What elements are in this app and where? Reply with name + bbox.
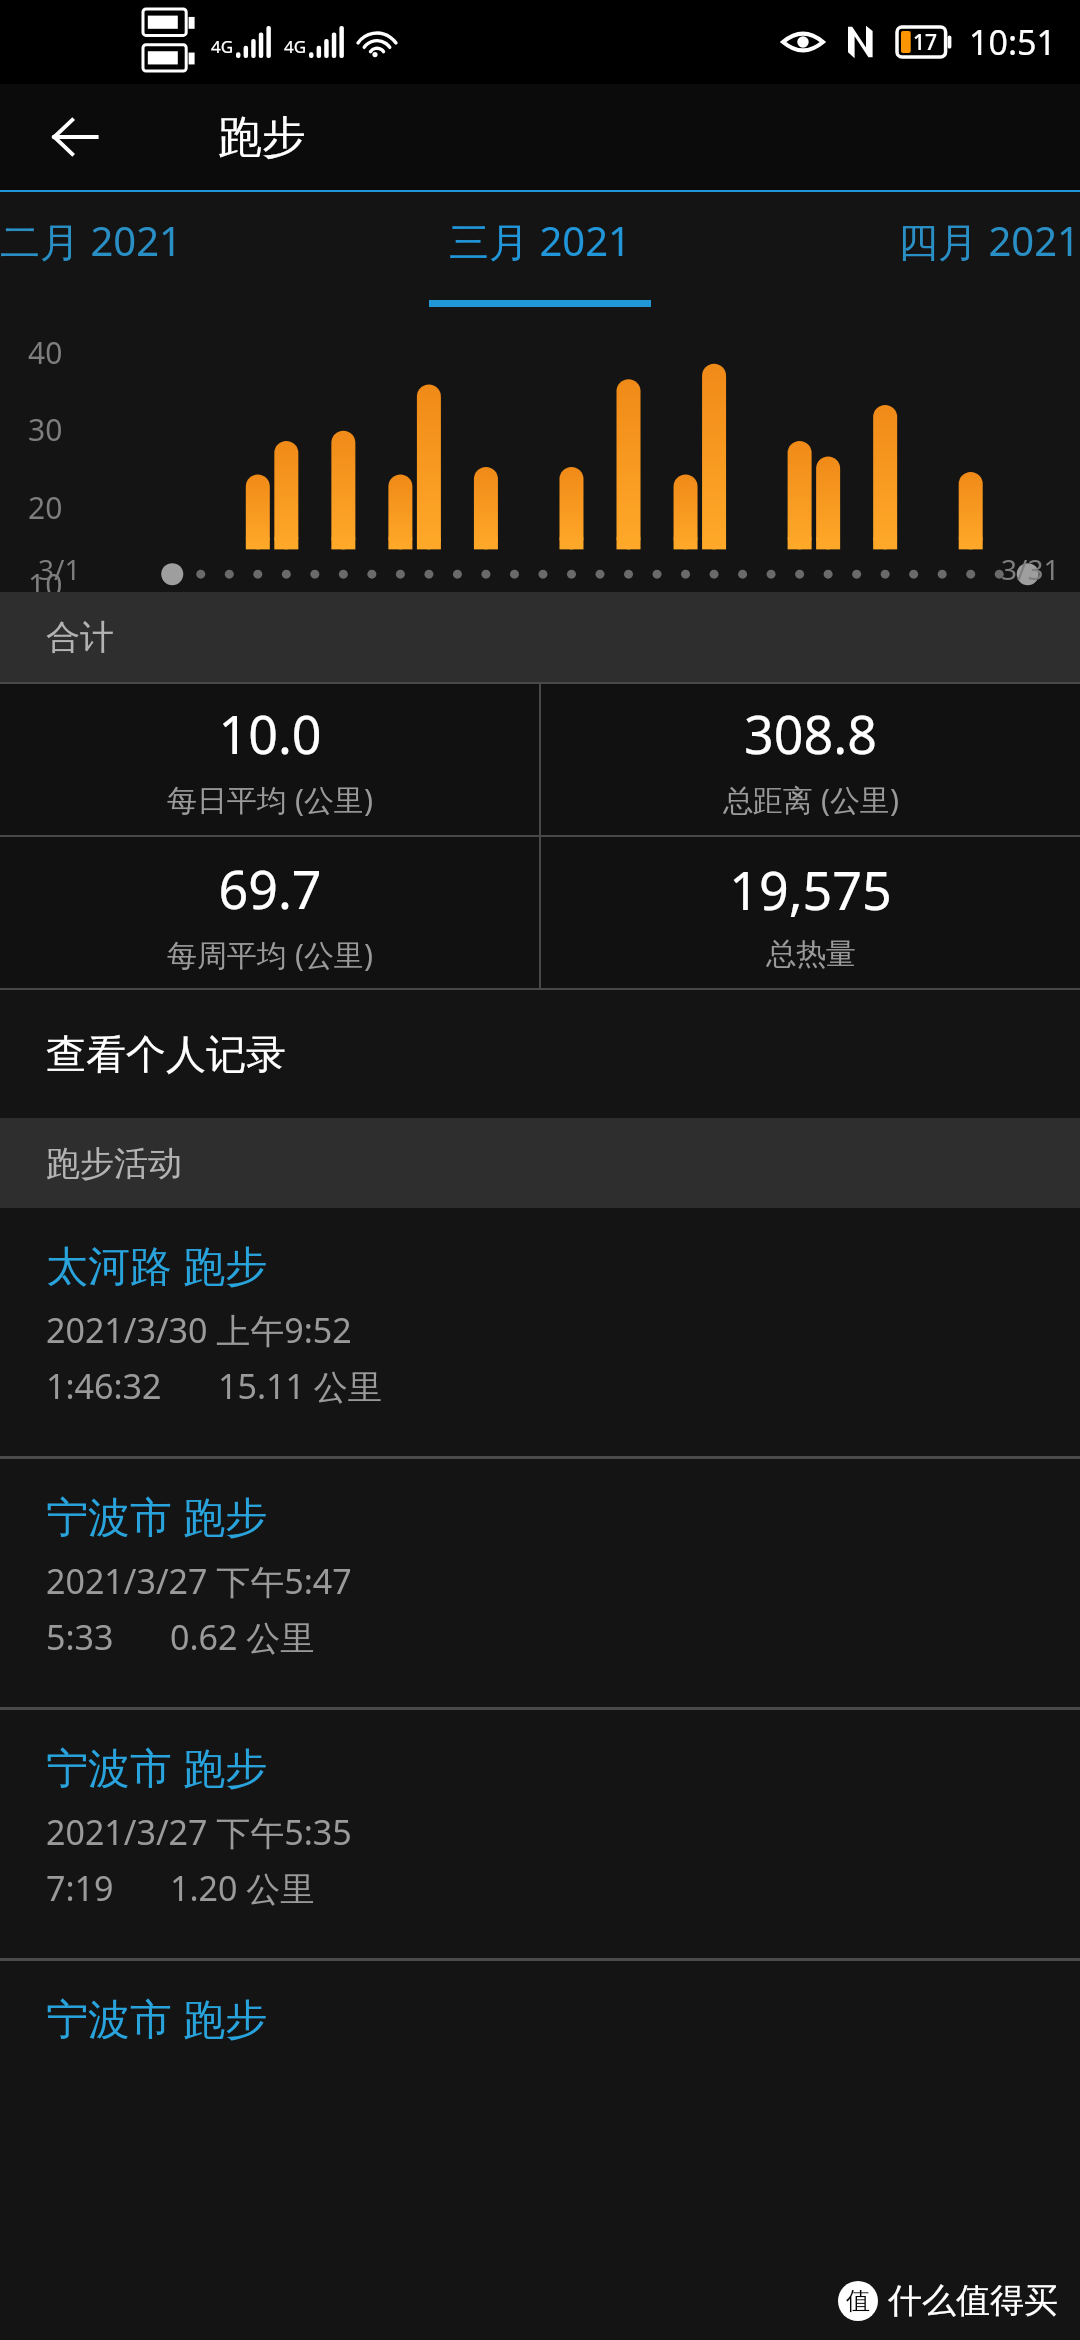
staticText: 三月 2021: [449, 213, 631, 268]
button[interactable]: 19,575: [541, 837, 1080, 990]
staticText: 3/31: [1001, 550, 1060, 588]
button[interactable]: 查看个人记录: [0, 990, 1080, 1118]
staticText: 跑步: [218, 110, 306, 165]
staticText: 二月 2021: [0, 213, 182, 268]
staticText: 10.0: [218, 698, 322, 769]
staticText: 每周平均 (公里): [167, 934, 373, 975]
staticText: 值: [846, 2286, 870, 2316]
staticText: 308.8: [744, 698, 877, 769]
button[interactable]: 三月 2021: [360, 192, 720, 317]
staticText: 合计: [46, 616, 114, 659]
staticText: 10: [28, 564, 63, 605]
staticText: 69.7: [218, 853, 322, 924]
button[interactable]: 宁波市 跑步: [0, 1710, 1080, 1958]
staticText: 1:46:32: [46, 1363, 162, 1409]
staticText: 19,575: [729, 854, 892, 925]
staticText: 每日平均 (公里): [167, 779, 373, 820]
staticText: 40: [28, 332, 63, 373]
button[interactable]: 太河路 跑步: [0, 1208, 1080, 1456]
staticText: 2021/3/27 下午5:47: [46, 1558, 352, 1604]
staticText: 查看个人记录: [46, 1029, 286, 1079]
button[interactable]: 跑步活动: [0, 1118, 1080, 1208]
staticText: 宁波市 跑步: [46, 1989, 267, 2046]
button[interactable]: 四月 2021: [720, 192, 1080, 317]
button[interactable]: 合计: [0, 592, 1080, 682]
button[interactable]: 二月 2021: [0, 192, 360, 317]
staticText: 20: [28, 487, 63, 528]
staticText: 15.11 公里: [218, 1363, 382, 1409]
staticText: 0.62 公里: [170, 1614, 315, 1660]
staticText: 4G: [211, 35, 234, 58]
staticText: 宁波市 跑步: [46, 1487, 267, 1544]
staticText: 什么值得买: [888, 2279, 1058, 2322]
staticText: 30: [28, 409, 63, 450]
staticText: 7:19: [46, 1865, 114, 1911]
staticText: 跑步活动: [46, 1142, 182, 1185]
staticText: 1.20 公里: [170, 1865, 315, 1911]
button[interactable]: Back: [30, 92, 120, 182]
staticText: 宁波市 跑步: [46, 1738, 267, 1795]
staticText: 2021/3/27 下午5:35: [46, 1809, 352, 1855]
staticText: 3/1: [38, 550, 81, 588]
button[interactable]: 69.7: [0, 837, 539, 990]
staticText: 0: [46, 641, 64, 682]
staticText: 四月 2021: [898, 213, 1080, 268]
staticText: 4G: [284, 35, 307, 58]
staticText: 太河路 跑步: [46, 1236, 267, 1293]
button[interactable]: 宁波市 跑步: [0, 1961, 1080, 2209]
button[interactable]: 10.0: [0, 682, 539, 835]
staticText: 17: [913, 28, 938, 57]
staticText: 2021/3/30 上午9:52: [46, 1307, 352, 1353]
staticText: 总距离 (公里): [723, 779, 899, 820]
staticText: 5:33: [46, 1614, 114, 1660]
staticText: 10:51: [969, 19, 1056, 65]
staticText: 总热量: [766, 935, 856, 973]
button[interactable]: 308.8: [541, 682, 1080, 835]
button[interactable]: 宁波市 跑步: [0, 1459, 1080, 1707]
